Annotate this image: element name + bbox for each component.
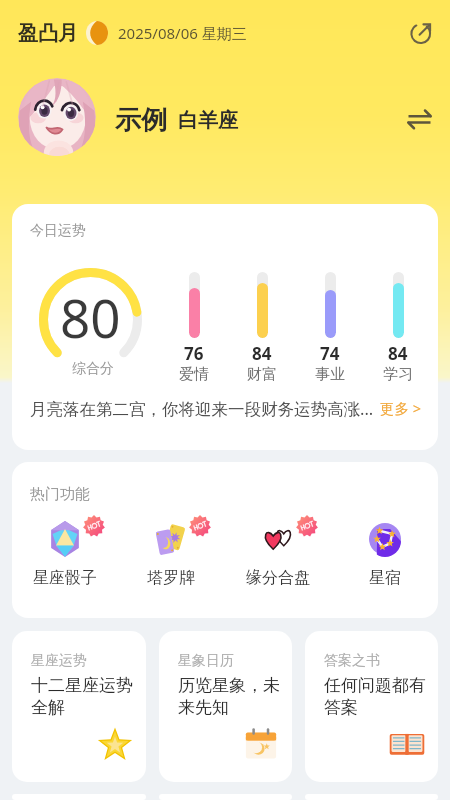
staticText: 星座运势 [31, 652, 87, 670]
staticText: 星宿 [369, 568, 401, 588]
staticText: 84 [252, 342, 272, 365]
staticText: 十二星座运势全解 [31, 675, 140, 718]
button[interactable]: 更多 > [380, 398, 422, 418]
staticText: 星座骰子 [33, 568, 97, 588]
staticText: 任何问题都有答案 [324, 675, 432, 718]
staticText: 事业 [315, 365, 345, 384]
staticText: 74 [320, 342, 340, 365]
staticText: 更多 > [380, 398, 422, 418]
staticText: 塔罗牌 [147, 568, 195, 588]
button[interactable]: 星座骰子 [12, 515, 118, 588]
staticText: 爱情 [179, 365, 209, 384]
staticText: 历览星象，未来先知 [178, 675, 286, 718]
staticText: 答案之书 [324, 652, 380, 670]
button[interactable]: 塔罗牌 [118, 515, 224, 588]
staticText: 2025/08/06 星期三 [118, 23, 247, 43]
staticText: 示例 [115, 104, 167, 137]
button[interactable]: Switch zodiac sign [400, 100, 438, 138]
button[interactable]: Share [404, 16, 438, 50]
staticText: 缘分合盘 [246, 568, 310, 588]
staticText: 学习 [383, 365, 413, 384]
staticText: 76 [184, 342, 204, 365]
button[interactable]: 星宿 [331, 515, 438, 588]
button[interactable]: 答案之书 [305, 631, 438, 782]
staticText: 80 [60, 281, 121, 353]
staticText: 热门功能 [30, 485, 90, 504]
staticText: 盈凸月 [18, 21, 78, 46]
staticText: 白羊座 [178, 108, 238, 133]
staticText: 财富 [247, 365, 277, 384]
button[interactable]: 星座运势 [12, 631, 146, 782]
staticText: 今日运势 [30, 222, 86, 240]
staticText: 星象日历 [178, 652, 234, 670]
button[interactable]: 缘分合盘 [224, 515, 331, 588]
button[interactable]: 星象日历 [159, 631, 292, 782]
button[interactable]: Avatar [18, 78, 96, 156]
staticText: 综合分 [72, 360, 114, 378]
staticText: 月亮落在第二宫，你将迎来一段财务运势高涨... [30, 397, 374, 420]
staticText: 84 [388, 342, 408, 365]
